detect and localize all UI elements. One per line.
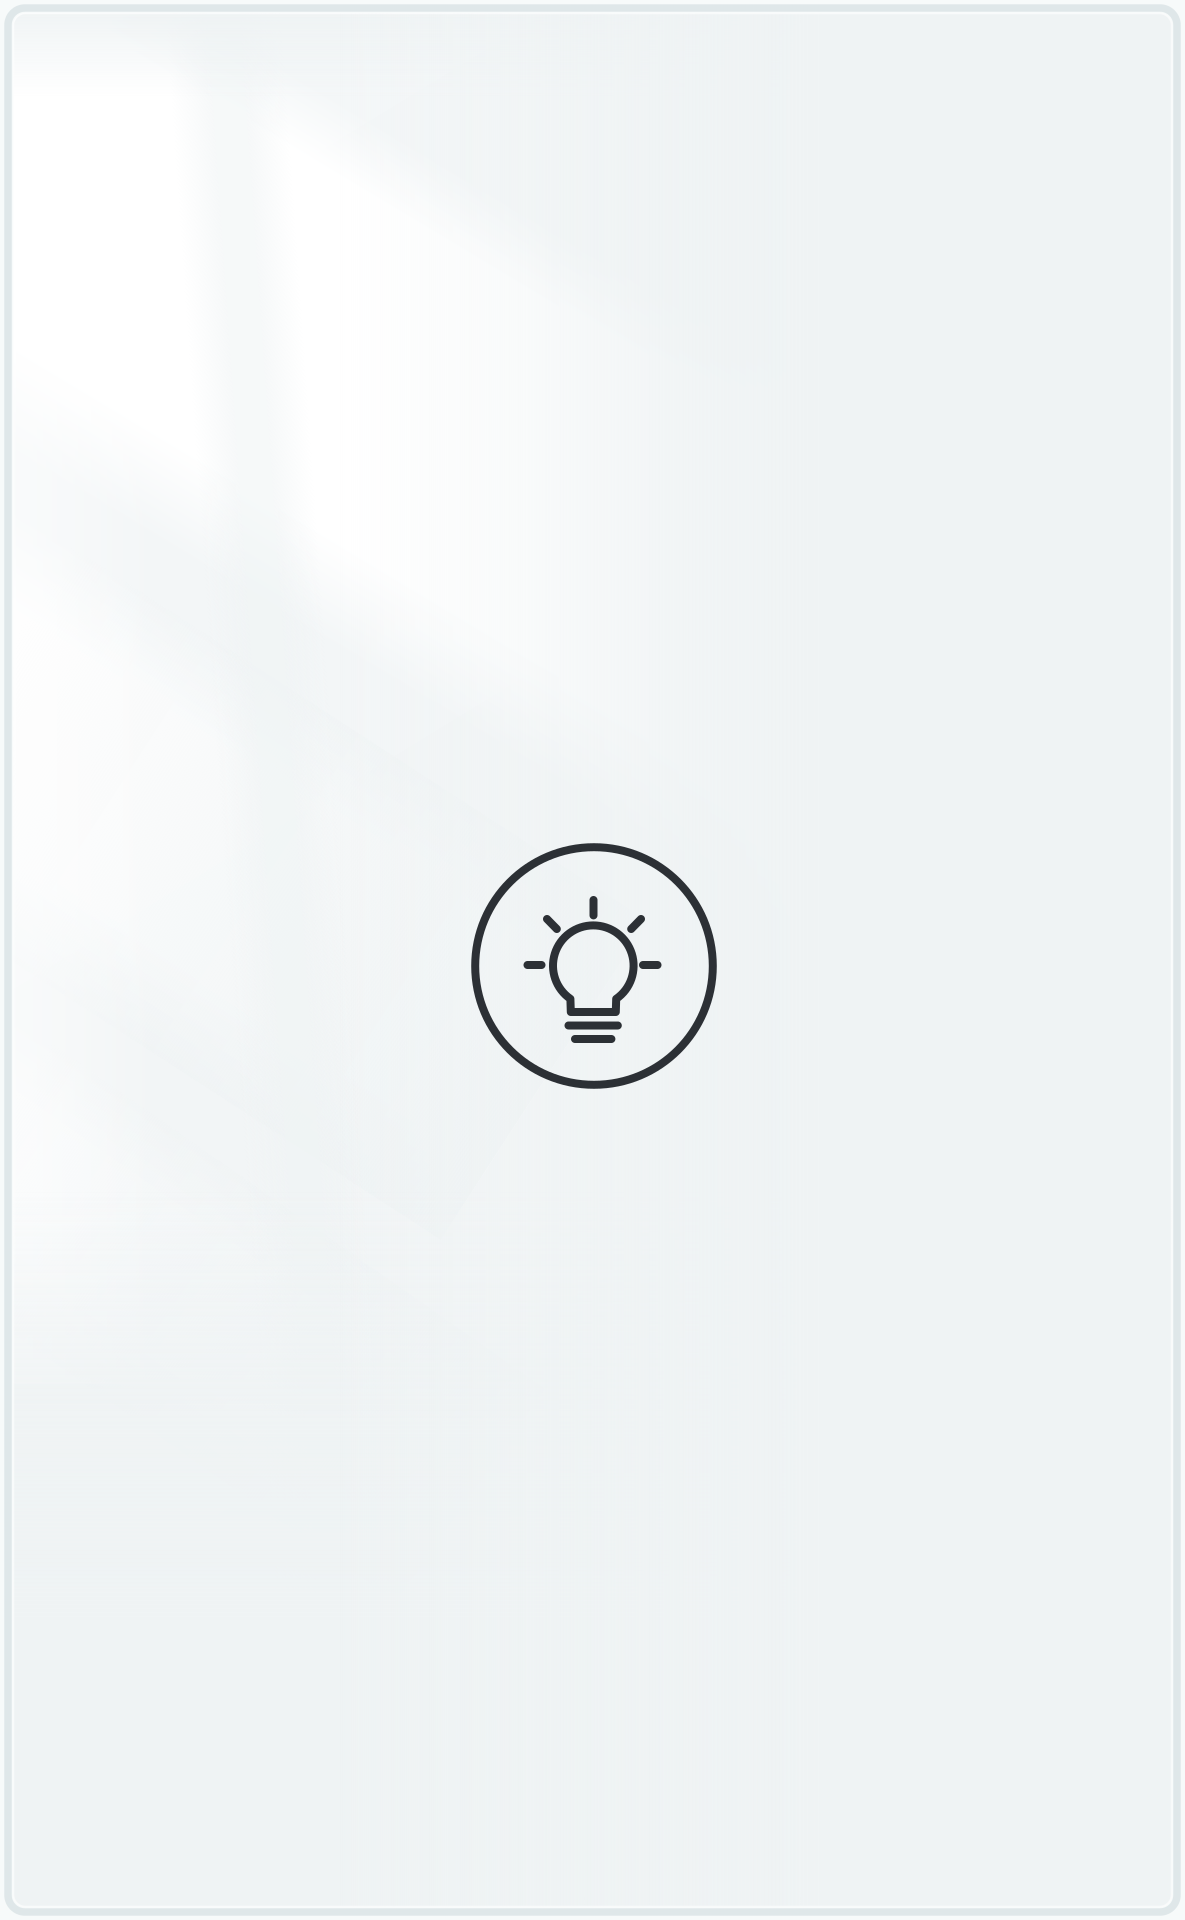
button[interactable]: Toggle light	[444, 816, 744, 1116]
